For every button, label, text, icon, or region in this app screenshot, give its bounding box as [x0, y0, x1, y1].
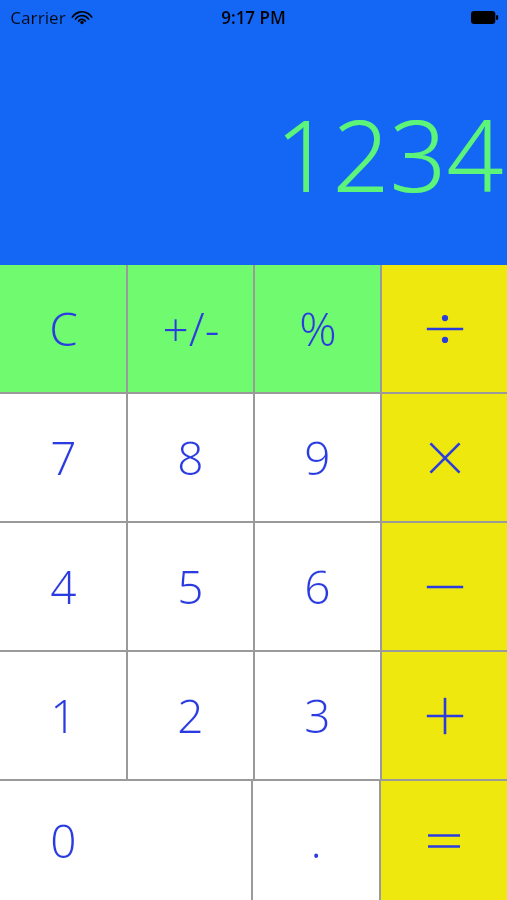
- button[interactable]: 5: [128, 523, 253, 650]
- staticText: 9:17 PM: [221, 6, 286, 29]
- button[interactable]: 8: [128, 394, 253, 521]
- staticText: 0: [50, 809, 77, 872]
- staticText: 4: [50, 555, 77, 618]
- button[interactable]: 4: [0, 523, 126, 650]
- button[interactable]: 7: [0, 394, 126, 521]
- button[interactable]: Divide: [382, 265, 507, 392]
- button[interactable]: Subtract: [382, 523, 507, 650]
- staticText: +/-: [162, 297, 220, 360]
- staticText: Carrier: [10, 6, 66, 29]
- staticText: 8: [177, 426, 204, 489]
- button[interactable]: 2: [128, 652, 253, 779]
- button[interactable]: Add: [382, 652, 507, 779]
- button[interactable]: Multiply: [382, 394, 507, 521]
- staticText: 3: [304, 684, 331, 747]
- staticText: %: [299, 297, 337, 360]
- button[interactable]: 9: [255, 394, 380, 521]
- button[interactable]: 1: [0, 652, 126, 779]
- staticText: 1234: [275, 85, 504, 221]
- staticText: 5: [177, 555, 204, 618]
- staticText: 2: [177, 684, 204, 747]
- button[interactable]: .: [253, 781, 379, 900]
- staticText: 7: [50, 426, 77, 489]
- button[interactable]: 3: [255, 652, 380, 779]
- button[interactable]: 6: [255, 523, 380, 650]
- staticText: C: [49, 297, 78, 360]
- staticText: .: [310, 809, 322, 872]
- button[interactable]: C: [0, 265, 126, 392]
- button[interactable]: +/-: [128, 265, 253, 392]
- button[interactable]: Equals: [381, 781, 507, 900]
- button[interactable]: 0: [0, 781, 251, 900]
- staticText: 9: [304, 426, 331, 489]
- staticText: 1: [50, 684, 77, 747]
- button[interactable]: %: [255, 265, 380, 392]
- staticText: 6: [304, 555, 331, 618]
